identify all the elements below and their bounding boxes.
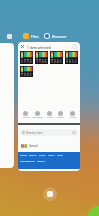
button[interactable]: Drive: [44, 111, 55, 119]
staticText: TODAY: [29, 154, 37, 157]
staticText: Nearby share: [26, 131, 43, 135]
staticText: DOCS: [39, 154, 46, 157]
staticText: More: [70, 116, 76, 119]
button[interactable]: Close: [18, 42, 80, 171]
button[interactable]: Close: [20, 44, 25, 49]
staticText: 1 item selected: [27, 45, 51, 49]
staticText: Files: [31, 34, 39, 39]
button[interactable]: Gmail: [21, 141, 77, 151]
staticText: ABOUT: [37, 160, 45, 163]
button[interactable]: More options: [72, 44, 78, 50]
staticText: Gmail: [29, 144, 38, 148]
button[interactable]: Gmail: [55, 111, 66, 119]
button[interactable]: Messages: [32, 111, 43, 119]
staticText: MAIL: [57, 154, 63, 157]
button[interactable]: Nearby: [20, 111, 31, 119]
staticText: Messages: [32, 116, 43, 119]
button[interactable]: Files app: [23, 33, 29, 39]
staticText: Drive: [47, 116, 53, 119]
staticText: Nearby: [22, 116, 30, 119]
button[interactable]: Nearby share: [22, 129, 76, 136]
staticText: CONTRIBUTE: [20, 160, 35, 163]
staticText: HOME: [20, 154, 27, 157]
staticText: Browser: [52, 34, 67, 39]
button[interactable]: Home: [43, 187, 57, 201]
staticText: NEWS: [48, 154, 55, 157]
staticText: Gmail: [57, 116, 64, 119]
button[interactable]: [0, 43, 14, 168]
button[interactable]: More: [67, 111, 78, 119]
button[interactable]: Browser app: [44, 33, 50, 39]
